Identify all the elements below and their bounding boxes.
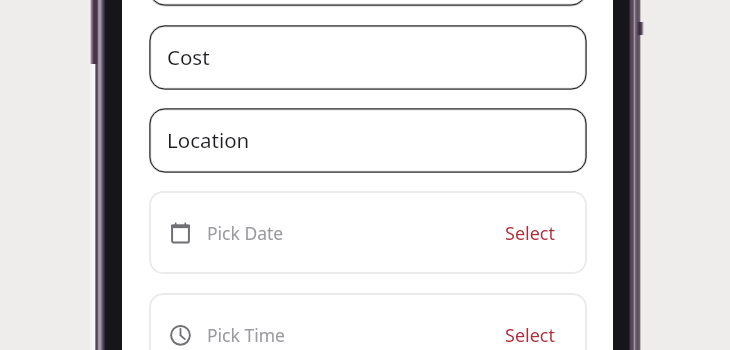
button[interactable]: Cost	[149, 25, 587, 90]
staticText: Pick Time	[207, 323, 285, 347]
staticText: Pick Date	[207, 221, 284, 245]
other: Pick time	[169, 323, 192, 346]
staticText: Cost	[167, 43, 210, 71]
button[interactable]: Select	[499, 317, 561, 350]
staticText: Location	[167, 126, 250, 154]
button[interactable]: Location	[149, 108, 587, 173]
other: Pick date	[169, 221, 192, 244]
staticText: Select	[505, 323, 555, 348]
button[interactable]: Select	[499, 215, 561, 252]
staticText: Select	[505, 221, 555, 246]
